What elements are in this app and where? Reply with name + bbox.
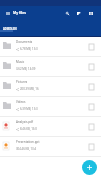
staticText: 3.62 MB, 14:09 [16, 67, 36, 71]
button[interactable]: Presentation.ppt [0, 137, 101, 157]
button[interactable]: Select Presentation.ppt [84, 137, 101, 157]
button[interactable]: Documents [0, 37, 101, 57]
staticText: Pictures [16, 80, 28, 84]
button[interactable]: Select Music [84, 57, 101, 77]
button[interactable]: Videos [0, 97, 101, 117]
staticText: 6.39 MB, 13:3 [20, 107, 38, 111]
staticText: 304.46 KB, 13:4 [16, 147, 37, 151]
button[interactable]: Add [82, 160, 97, 175]
staticText: Videos [16, 100, 26, 104]
button[interactable]: Select Videos [84, 97, 101, 117]
staticText: ADMIN.EN [3, 27, 17, 31]
button[interactable]: Search [62, 8, 72, 18]
button[interactable]: Menu [3, 8, 13, 18]
staticText: 200.39 MB, 16 [20, 87, 39, 91]
staticText: Analysis.pdf [16, 120, 33, 124]
button[interactable]: Pictures [0, 77, 101, 97]
staticText: 8.46 KB, 13:0 [20, 127, 37, 131]
button[interactable]: Music [0, 57, 101, 77]
staticText: Presentation.ppt [16, 140, 40, 144]
button[interactable]: Select Analysis.pdf [84, 117, 101, 137]
staticText: Music [16, 60, 25, 64]
staticText: 6.78 MB, 13:3 [20, 47, 38, 51]
button[interactable]: View mode [86, 8, 96, 18]
staticText: Documents [16, 40, 33, 44]
staticText: My files [13, 10, 27, 15]
button[interactable]: Select Documents [84, 37, 101, 57]
button[interactable]: Sort [74, 8, 84, 18]
button[interactable]: Select Pictures [84, 77, 101, 97]
button[interactable]: Analysis.pdf [0, 117, 101, 137]
